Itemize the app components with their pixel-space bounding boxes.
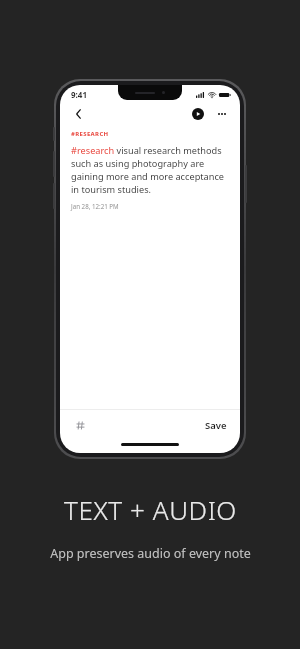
staticText: App preserves audio of every note <box>50 545 251 562</box>
button[interactable]: Play audio <box>190 106 206 122</box>
staticText: TEXT + AUDIO <box>64 492 237 527</box>
button[interactable]: More options <box>214 106 230 122</box>
staticText: Save <box>205 419 227 432</box>
staticText: Jan 28, 12:21 PM <box>71 202 119 210</box>
button[interactable]: Add tag <box>71 416 89 434</box>
staticText: 9:41 <box>71 89 87 100</box>
staticText: #research visual research methods such a… <box>71 144 228 196</box>
button[interactable]: Save <box>203 416 229 435</box>
staticText: #RESEARCH <box>71 130 109 138</box>
button[interactable]: Back <box>70 106 86 122</box>
